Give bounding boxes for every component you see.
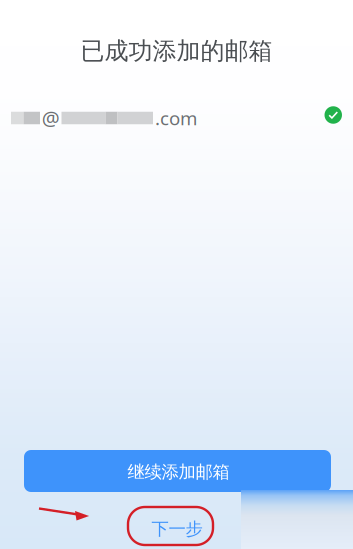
staticText: 下一步 — [151, 518, 202, 540]
staticText: @ — [42, 105, 60, 131]
staticText: .com — [155, 106, 197, 130]
staticText: 已成功添加的邮箱 — [80, 36, 272, 66]
staticText: 继续添加邮箱 — [127, 461, 229, 483]
button[interactable]: 下一步 — [135, 512, 219, 546]
button[interactable]: 继续添加邮箱 — [24, 450, 331, 492]
